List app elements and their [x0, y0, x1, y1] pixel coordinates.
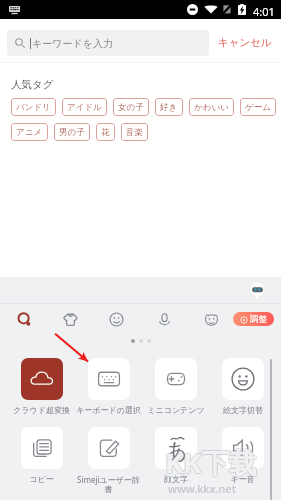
staticText: KK下载 — [164, 443, 256, 481]
staticText: KK下载 — [166, 443, 258, 481]
staticText: KK下载 — [164, 444, 256, 482]
staticText: KK下载 — [165, 445, 257, 483]
staticText: 絵文字切替 — [223, 405, 263, 415]
button[interactable]: ゲーム — [240, 98, 276, 116]
staticText: KK下载 — [165, 443, 257, 481]
staticText: 4:01 — [253, 4, 275, 19]
button[interactable]: ミニコンテンツ — [155, 358, 197, 400]
staticText: KK下载 — [165, 444, 257, 482]
button[interactable]: Emoji — [103, 306, 129, 332]
staticText: かわいい — [194, 102, 229, 113]
button[interactable]: Stickers — [198, 306, 224, 332]
other: Search — [15, 38, 25, 48]
staticText: 花 — [101, 127, 110, 138]
button[interactable]: Simejiユーザー辞書 — [88, 427, 130, 469]
staticText: Simejiユーザー辞書 — [75, 474, 142, 495]
button[interactable]: 花 — [96, 123, 115, 141]
button[interactable]: 女の子 — [113, 98, 149, 116]
staticText: ゲーム — [245, 102, 271, 113]
staticText: コピー — [29, 474, 54, 484]
staticText: 顔文字 — [164, 474, 188, 484]
button[interactable]: Voice input — [151, 306, 177, 332]
button[interactable]: かわいい — [189, 98, 234, 116]
staticText: 女の子 — [118, 102, 144, 113]
staticText: あ — [166, 438, 188, 464]
button[interactable]: 音楽 — [121, 123, 148, 141]
button[interactable]: キー音 — [222, 427, 264, 469]
button[interactable]: Assistant — [249, 282, 266, 303]
staticText: ミニコンテンツ — [147, 405, 205, 415]
button[interactable]: バンドリ — [11, 98, 56, 116]
button[interactable]: Search sticker — [11, 306, 37, 332]
staticText: 好き — [160, 102, 178, 113]
button[interactable]: キャンセル — [209, 29, 281, 56]
staticText: www.kkx.net — [168, 481, 236, 496]
button[interactable]: アニメ — [11, 123, 48, 141]
staticText: アニメ — [16, 127, 43, 138]
button[interactable]: キーボードの選択 — [88, 358, 130, 400]
button[interactable]: 顔文字 — [155, 427, 197, 469]
staticText: 音楽 — [126, 127, 143, 138]
staticText: 人気タグ — [11, 78, 54, 91]
staticText: キーボードの選択 — [76, 405, 141, 415]
staticText: クラウド超変換 — [13, 405, 70, 415]
button[interactable]: 調整 — [233, 312, 274, 326]
staticText: バンドリ — [16, 102, 51, 113]
staticText: KK下载 — [166, 444, 258, 482]
button[interactable]: 男の子 — [54, 123, 90, 141]
button[interactable]: 絵文字切替 — [222, 358, 264, 400]
button[interactable]: Skins — [57, 306, 83, 332]
staticText: KK下载 — [164, 445, 256, 483]
staticText: キー音 — [230, 474, 255, 484]
staticText: キーワードを入力 — [32, 37, 113, 50]
staticText: KK下载 — [166, 445, 258, 483]
staticText: 男の子 — [59, 127, 85, 138]
button[interactable]: コピー — [21, 427, 63, 469]
button[interactable]: Search — [7, 30, 209, 56]
button[interactable]: 好き — [155, 98, 183, 116]
button[interactable]: クラウド超変換 — [21, 358, 63, 400]
staticText: 調整 — [250, 314, 267, 325]
staticText: キャンセル — [218, 36, 272, 49]
button[interactable]: アイドル — [62, 98, 107, 116]
staticText: アイドル — [67, 102, 102, 113]
